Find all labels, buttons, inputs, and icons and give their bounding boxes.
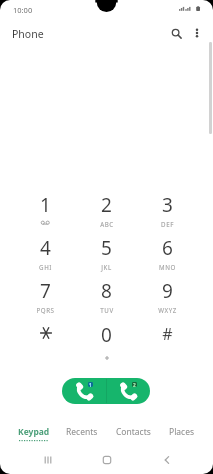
- button[interactable]: Recents: [57, 421, 107, 441]
- button[interactable]: Call with SIM 1: [62, 378, 106, 404]
- staticText: 7: [40, 278, 51, 304]
- staticText: Contacts: [116, 426, 151, 438]
- button[interactable]: Home: [92, 446, 122, 474]
- staticText: 8: [101, 278, 112, 304]
- button[interactable]: More options: [185, 21, 209, 45]
- staticText: Recents: [66, 426, 98, 438]
- staticText: 6: [162, 235, 173, 261]
- button[interactable]: Keypad: [9, 421, 59, 441]
- staticText: WXYZ: [158, 306, 177, 314]
- button[interactable]: Contacts: [108, 421, 158, 441]
- button[interactable]: 9: [137, 274, 198, 317]
- button[interactable]: 8: [76, 274, 137, 317]
- button[interactable]: Places: [157, 421, 207, 441]
- staticText: JKL: [101, 263, 112, 271]
- button[interactable]: Back: [152, 446, 182, 474]
- staticText: MNO: [159, 263, 176, 271]
- button[interactable]: 3: [137, 188, 198, 231]
- button[interactable]: #: [137, 318, 198, 361]
- staticText: GHI: [39, 263, 52, 271]
- button[interactable]: 2: [76, 188, 137, 231]
- staticText: 9: [162, 278, 173, 304]
- staticText: #: [162, 323, 173, 345]
- staticText: 4: [40, 235, 51, 261]
- staticText: 1: [40, 192, 51, 218]
- button[interactable]: 4: [15, 231, 76, 274]
- staticText: 2: [133, 382, 136, 387]
- button[interactable]: 1: [15, 188, 76, 231]
- staticText: 3: [162, 192, 173, 218]
- staticText: 1: [89, 382, 92, 387]
- button[interactable]: 5: [76, 231, 137, 274]
- staticText: PQRS: [36, 306, 55, 314]
- staticText: ABC: [100, 220, 114, 228]
- button[interactable]: [15, 318, 76, 361]
- staticText: Keypad: [18, 426, 50, 438]
- staticText: TUV: [100, 306, 114, 314]
- staticText: DEF: [161, 220, 174, 228]
- staticText: 2: [101, 192, 112, 218]
- button[interactable]: 0: [76, 318, 137, 361]
- staticText: 0: [101, 322, 112, 348]
- staticText: 10:00: [13, 5, 33, 15]
- button[interactable]: Recents: [33, 446, 63, 474]
- staticText: Phone: [12, 27, 44, 41]
- button[interactable]: 7: [15, 274, 76, 317]
- staticText: Places: [169, 426, 195, 438]
- button[interactable]: 6: [137, 231, 198, 274]
- button[interactable]: Search: [164, 21, 188, 45]
- button[interactable]: Call with SIM 2: [106, 378, 150, 404]
- staticText: 5: [101, 235, 112, 261]
